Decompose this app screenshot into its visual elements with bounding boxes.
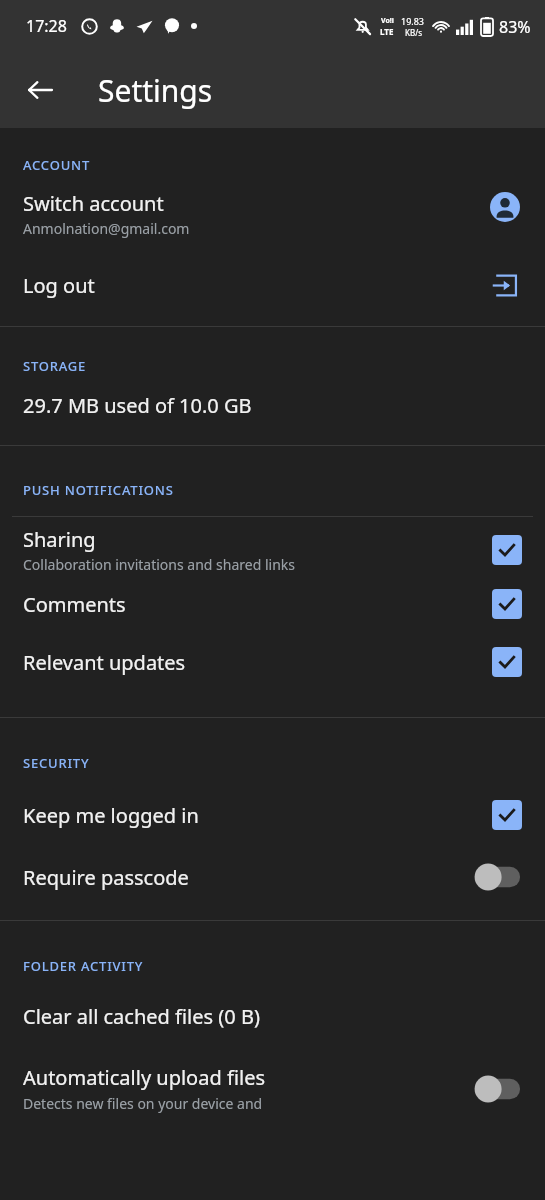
staticText: Relevant updates: [23, 649, 186, 676]
staticText: Automatically upload files: [23, 1064, 265, 1091]
staticText: Comments: [23, 591, 126, 618]
button[interactable]: Automatically upload files: [0, 1064, 545, 1113]
staticText: Switch account: [23, 190, 164, 217]
staticText: ACCOUNT: [23, 156, 91, 174]
button[interactable]: Toggle off: [474, 862, 522, 892]
staticText: 83%: [499, 16, 531, 38]
button[interactable]: Account: [488, 190, 522, 224]
staticText: 19.83: [401, 15, 425, 27]
button[interactable]: Clear all cached files (0 B): [0, 1003, 545, 1030]
button[interactable]: Relevant updates: [0, 633, 545, 695]
staticText: KB/s: [405, 27, 422, 38]
staticText: Require passcode: [23, 864, 474, 891]
staticText: PUSH NOTIFICATIONS: [23, 481, 174, 499]
button[interactable]: Comments: [0, 583, 545, 633]
staticText: STORAGE: [23, 357, 87, 375]
staticText: SECURITY: [23, 754, 90, 772]
button[interactable]: Log out: [488, 268, 522, 302]
button[interactable]: Checked: [492, 647, 522, 677]
staticText: Collaboration invitations and shared lin…: [23, 555, 295, 574]
staticText: LTE: [380, 26, 394, 37]
staticText: Vo!i: [381, 16, 394, 26]
button[interactable]: Require passcode: [0, 862, 545, 892]
staticText: Detects new files on your device and: [23, 1094, 263, 1113]
staticText: Settings: [98, 70, 213, 111]
button[interactable]: Back: [14, 64, 66, 116]
button[interactable]: Sharing: [0, 517, 545, 583]
staticText: 17:28: [26, 15, 67, 37]
staticText: Sharing: [23, 526, 96, 553]
staticText: Log out: [23, 272, 488, 299]
button[interactable]: Log out: [0, 268, 545, 302]
button[interactable]: Checked: [492, 535, 522, 565]
button[interactable]: 29.7 MB used of 10.0 GB: [0, 392, 545, 419]
button[interactable]: Toggle off: [474, 1074, 522, 1104]
button[interactable]: Switch account: [0, 190, 545, 238]
button[interactable]: Keep me logged in: [0, 800, 545, 830]
staticText: 29.7 MB used of 10.0 GB: [23, 392, 252, 419]
staticText: Keep me logged in: [23, 802, 492, 829]
staticText: FOLDER ACTIVITY: [23, 957, 144, 975]
staticText: Clear all cached files (0 B): [23, 1003, 260, 1030]
button[interactable]: Checked: [492, 800, 522, 830]
button[interactable]: Checked: [492, 589, 522, 619]
staticText: Anmolnation@gmail.com: [23, 219, 190, 238]
